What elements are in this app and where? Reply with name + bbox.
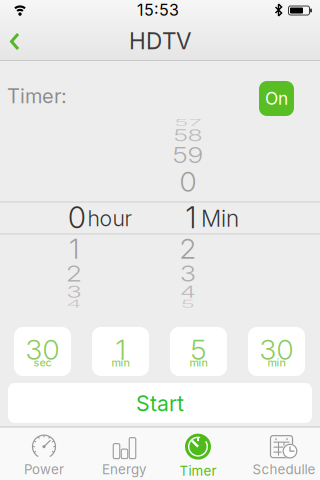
button[interactable]: 30 [248,327,305,376]
staticText: min [111,356,129,369]
staticText: hour [87,206,132,231]
staticText: sec [33,356,51,369]
staticText: 30 [259,333,293,366]
staticText: 5 [181,290,195,318]
button[interactable]: 5 [170,327,227,376]
staticText: 1 [115,333,125,366]
staticText: Schedulle [252,462,315,477]
staticText: Start [136,391,184,416]
staticText: 4 [66,290,81,318]
staticText: min [189,356,207,369]
staticText: 0 [68,200,86,235]
staticText: 4 [180,277,196,307]
staticText: 57 [174,108,201,137]
staticText: Timer [179,463,216,479]
staticText: Timer: [7,84,67,108]
staticText: 5 [190,333,206,366]
button[interactable]: Back [0,28,30,55]
staticText: On [265,88,288,109]
staticText: 2 [66,258,82,289]
staticText: 3 [180,258,196,289]
staticText: 0 [179,165,196,198]
button[interactable]: Schedulle [244,431,320,480]
button[interactable]: 1 [92,327,149,376]
button[interactable]: Energy [84,431,164,480]
button[interactable]: Start [8,383,312,423]
staticText: 58 [173,121,202,150]
staticText: Power [24,462,64,477]
button[interactable]: Timer [158,431,238,480]
staticText: min [267,356,285,369]
staticText: 1 [185,200,196,235]
button[interactable]: 30 [14,327,71,376]
staticText: Min [201,205,239,232]
button[interactable]: Power [4,431,84,480]
staticText: 30 [25,333,59,366]
staticText: 15:53 [137,1,179,19]
staticText: 3 [66,277,81,307]
staticText: 1 [69,232,79,265]
staticText: 59 [172,139,203,171]
staticText: HDTV [129,28,191,54]
staticText: Energy [102,462,146,477]
staticText: 2 [179,232,196,265]
button[interactable]: On [259,81,294,116]
